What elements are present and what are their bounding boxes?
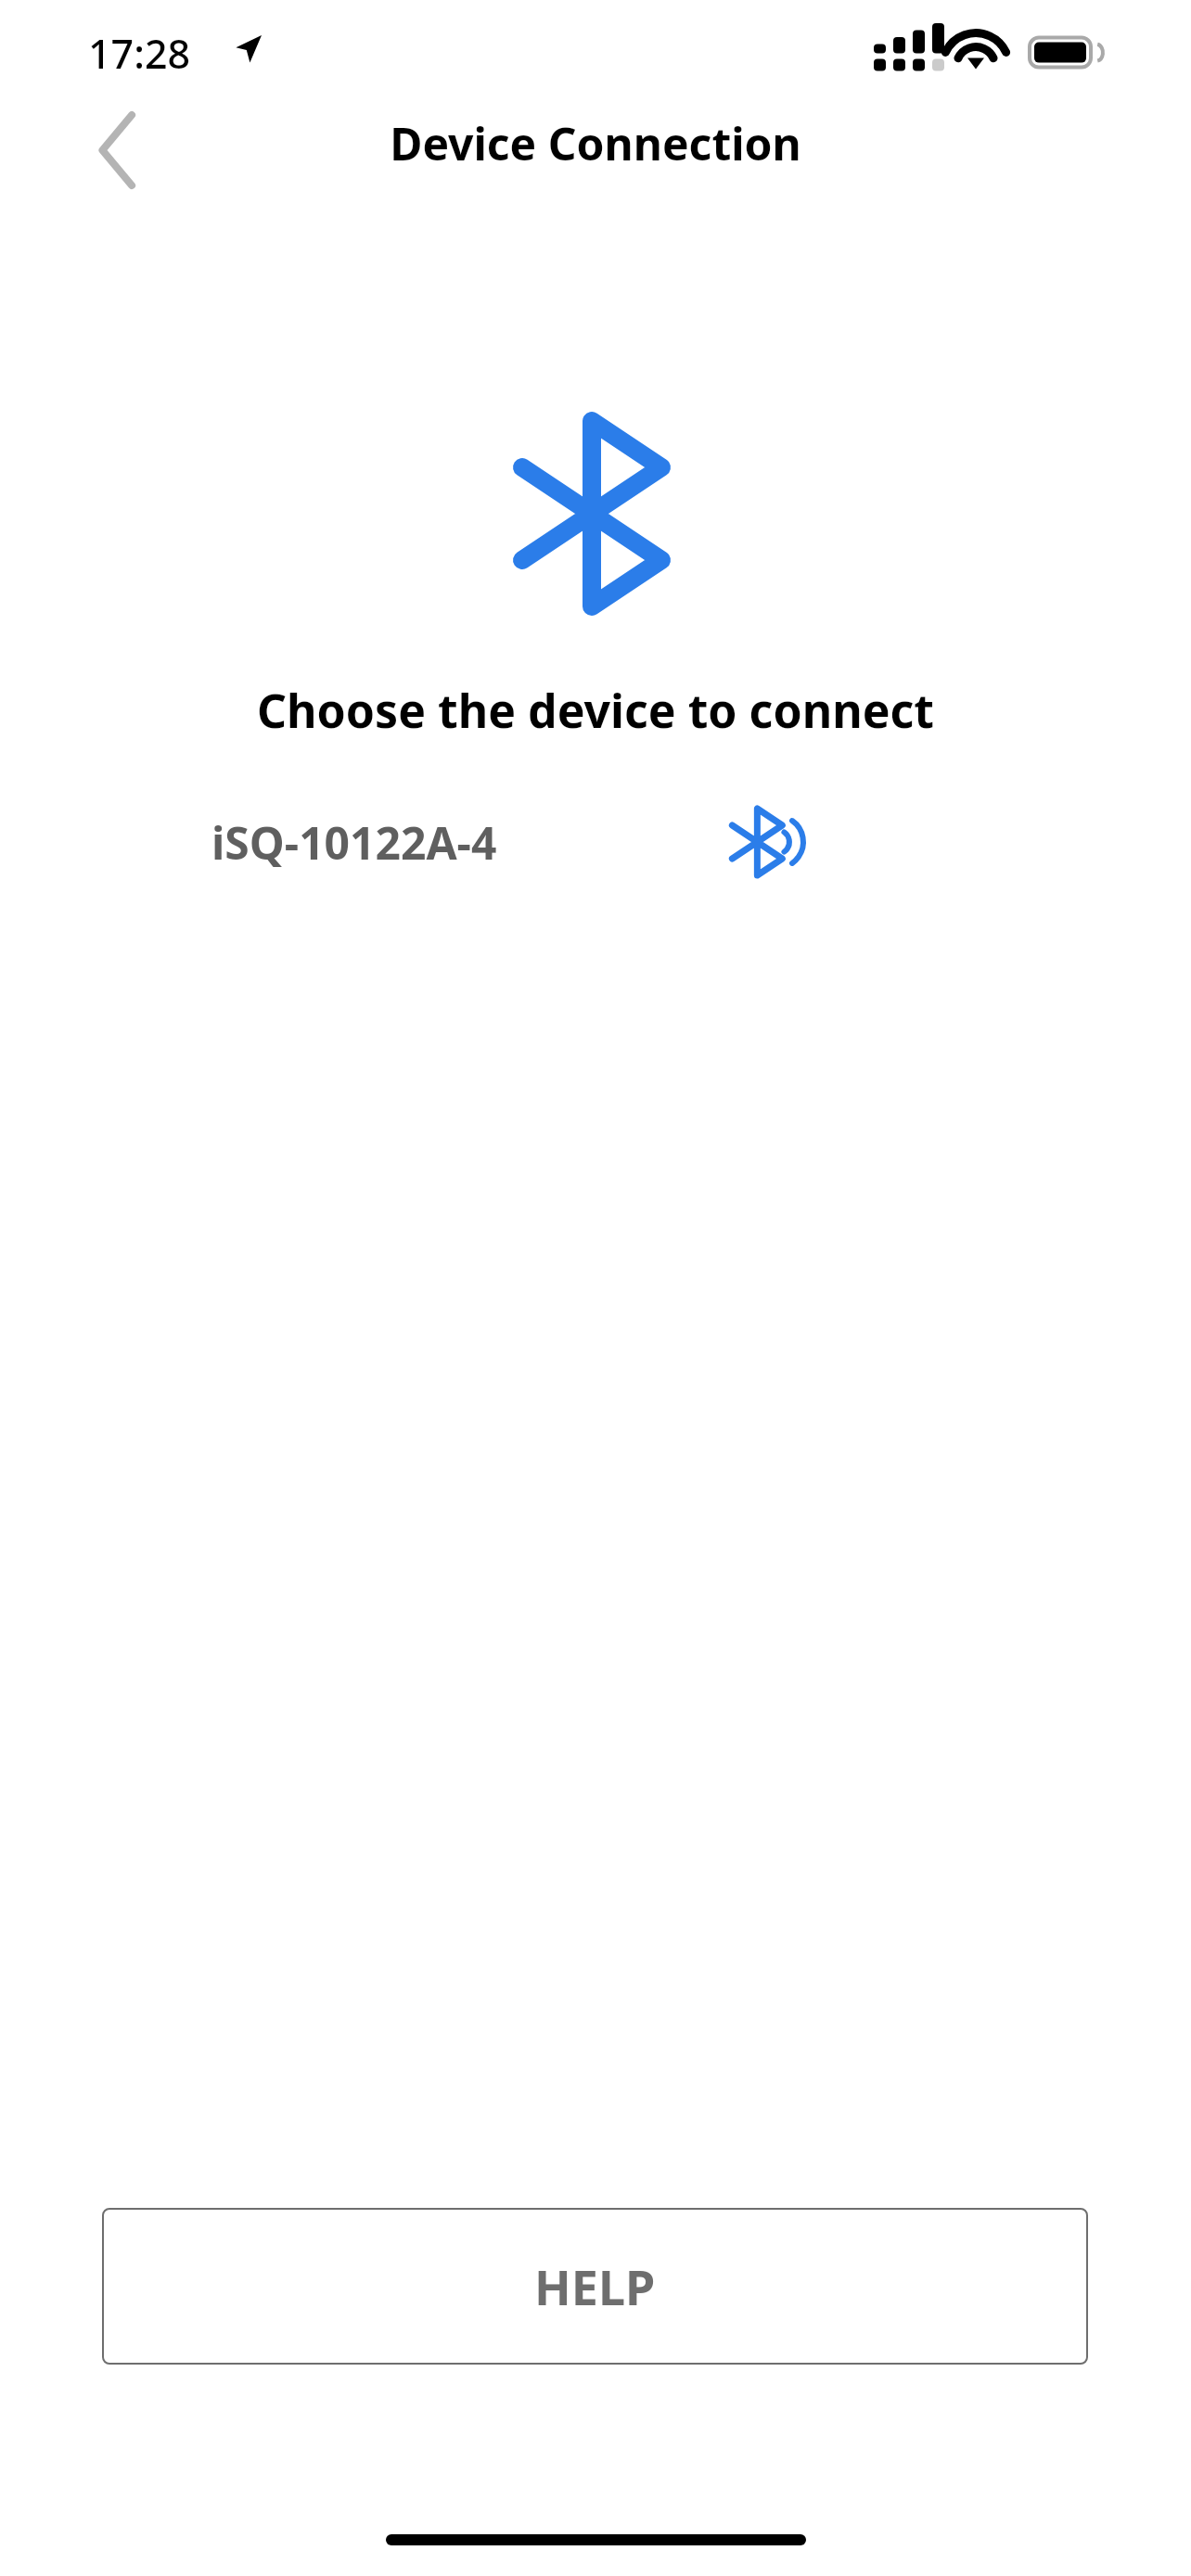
button[interactable]: iSQ-10122A-4: [0, 786, 1191, 898]
staticText: Device Connection: [390, 113, 801, 173]
staticText: HELP: [534, 2253, 656, 2319]
button[interactable]: Back: [65, 106, 172, 194]
staticText: iSQ-10122A-4: [211, 812, 497, 873]
button[interactable]: HELP: [102, 2208, 1088, 2365]
staticText: Choose the device to connect: [0, 679, 1191, 742]
staticText: 17:28: [88, 26, 191, 81]
